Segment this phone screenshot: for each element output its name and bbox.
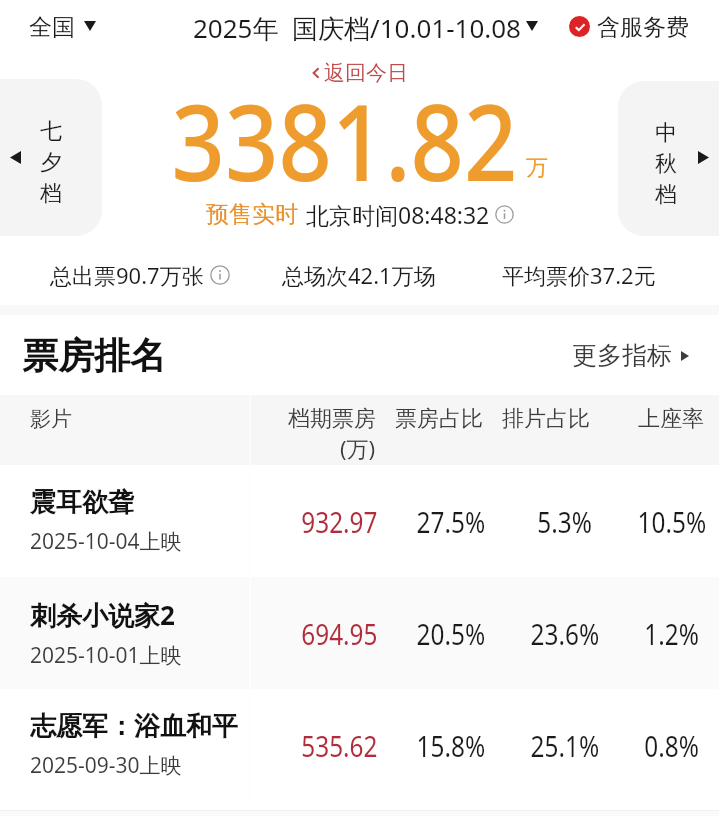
staticText: 总出票90.7万张 (50, 260, 204, 290)
staticText: 中 (655, 119, 677, 147)
button[interactable]: 全国 (29, 13, 96, 42)
staticText: 影片 (30, 406, 72, 432)
staticText: 25.1% (531, 726, 599, 765)
staticText: 总场次42.1万场 (282, 260, 436, 290)
staticText: 排片占比 (502, 405, 590, 433)
staticText: 3381.82 (172, 69, 517, 212)
staticText: 北京时间08:48:32 (306, 199, 490, 230)
staticText: 更多指标 (572, 340, 672, 371)
button[interactable]: 含服务费 (569, 13, 689, 42)
staticText: 932.97 (301, 502, 378, 541)
staticText: 万 (526, 154, 548, 182)
button[interactable]: 中秋档 (618, 81, 719, 236)
staticText: 2025-09-30上映 (30, 751, 182, 780)
staticText: 全国 (29, 13, 75, 42)
staticText: 535.62 (301, 726, 378, 765)
staticText: 档期票房 (288, 405, 376, 433)
staticText: 档 (655, 181, 677, 209)
staticText: 20.5% (417, 614, 485, 653)
staticText: 票房占比 (395, 405, 483, 433)
staticText: 10.5% (638, 502, 706, 541)
staticText: 1.2% (644, 614, 700, 653)
staticText: 15.8% (417, 726, 485, 765)
button[interactable]: 震耳欲聋 (0, 465, 719, 577)
button[interactable]: 更多指标 (572, 340, 689, 371)
staticText: 震耳欲聋 (30, 486, 134, 519)
staticText: 上座率 (638, 405, 704, 433)
staticText: 档 (40, 180, 62, 208)
staticText: 5.3% (537, 502, 593, 541)
staticText: 23.6% (531, 614, 599, 653)
staticText: 含服务费 (597, 13, 689, 42)
staticText: (万) (340, 433, 376, 463)
button[interactable]: 2025年 国庆档/10.01-10.08 (193, 10, 538, 46)
staticText: 694.95 (301, 614, 378, 653)
staticText: 2025-10-01上映 (30, 641, 182, 670)
staticText: 秋 (655, 150, 677, 178)
staticText: 刺杀小说家2 (30, 597, 175, 633)
button[interactable]: 刺杀小说家2 (0, 577, 719, 689)
staticText: 返回今日 (324, 60, 408, 86)
button[interactable]: 七夕档 (0, 79, 102, 236)
button[interactable]: 志愿军：浴血和平 (0, 689, 719, 801)
staticText: 平均票价37.2元 (502, 260, 656, 290)
staticText: 2025年 国庆档/10.01-10.08 (193, 10, 521, 46)
button[interactable]: 返回今日 (312, 60, 408, 86)
staticText: 票房排名 (22, 333, 166, 378)
staticText: 七 (40, 118, 62, 146)
staticText: 27.5% (417, 502, 485, 541)
staticText: 2025-10-04上映 (30, 527, 182, 556)
staticText: 志愿军：浴血和平 (30, 710, 238, 743)
staticText: 夕 (40, 149, 62, 177)
staticText: 预售实时 (206, 200, 298, 229)
staticText: 0.8% (644, 726, 700, 765)
